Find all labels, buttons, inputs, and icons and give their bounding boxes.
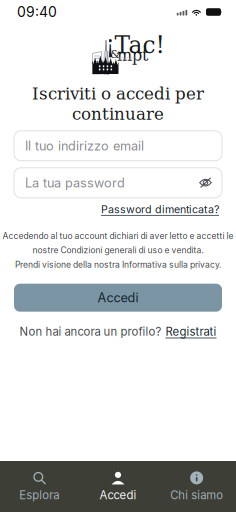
staticText: Password dimenticata? xyxy=(101,203,219,216)
staticText: Chi siamo xyxy=(170,488,223,502)
button[interactable]: Password dimenticata? xyxy=(101,203,219,216)
staticText: nostre Condizioni generali di uso e vend… xyxy=(32,245,203,255)
button[interactable]: Registrati xyxy=(165,325,216,338)
staticText: Iscriviti o accedi per xyxy=(32,84,204,103)
button[interactable]: Esplora xyxy=(0,461,79,512)
button[interactable]: Accedi xyxy=(14,284,222,312)
staticText: Registrati xyxy=(165,325,216,338)
staticText: continuare xyxy=(72,104,164,124)
staticText: Esplora xyxy=(19,488,59,502)
staticText: mpt xyxy=(117,46,148,65)
staticText: Il tuo indirizzo email xyxy=(25,138,144,153)
staticText: 09:40 xyxy=(17,3,57,20)
button[interactable]: Accedi xyxy=(79,461,157,512)
staticText: & xyxy=(110,47,120,61)
staticText: ARCHITETTI xyxy=(117,57,135,61)
staticText: Prendi visione della nostra Informativa … xyxy=(15,259,221,270)
staticText: ¡Tac! xyxy=(105,31,164,59)
staticText: La tua password xyxy=(25,175,125,190)
staticText: Accedi xyxy=(97,290,138,305)
staticText: Non hai ancora un profilo? xyxy=(19,325,161,338)
staticText: Accedi xyxy=(99,488,136,502)
button[interactable]: Chi siamo xyxy=(157,461,236,512)
staticText: Accedendo al tuo account dichiari di ave… xyxy=(2,231,233,241)
